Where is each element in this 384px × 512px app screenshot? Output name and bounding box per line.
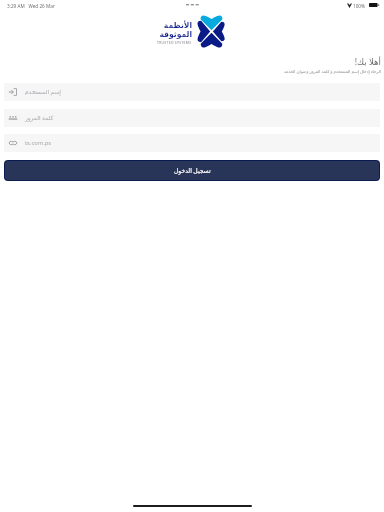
- staticText: الرجاء إدخال إسم المستخدم و كلمة المرور …: [283, 69, 381, 75]
- staticText: تسجيل الدخول: [174, 167, 211, 175]
- button[interactable]: Username: [4, 83, 380, 101]
- button[interactable]: Service address: [4, 134, 380, 152]
- staticText: الأنظمة: [163, 21, 192, 30]
- other: Username: [9, 88, 17, 96]
- staticText: TRUSTED SYSTEMS: [157, 40, 192, 45]
- staticText: 3:29 AM Wed 26 Mar: [7, 3, 55, 9]
- staticText: 100%: [353, 3, 365, 9]
- staticText: كلمة المرور: [25, 114, 54, 122]
- button[interactable]: تسجيل الدخول: [5, 161, 379, 180]
- staticText: ‫أهلا بك!‬: [354, 56, 381, 68]
- staticText: إسم المستخدم: [25, 88, 61, 96]
- other: Service address: [9, 139, 17, 147]
- button[interactable]: Password: [4, 109, 380, 127]
- other: Password: [9, 114, 17, 122]
- staticText: ts.com.ps: [25, 139, 52, 147]
- staticText: الموثوقة: [159, 30, 192, 39]
